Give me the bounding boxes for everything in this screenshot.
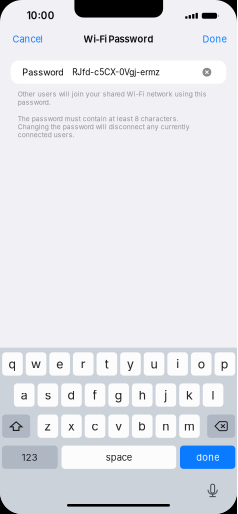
button[interactable]: s <box>38 383 58 407</box>
button[interactable]: o <box>191 352 211 376</box>
button[interactable]: l <box>203 383 223 407</box>
button[interactable]: k <box>179 383 200 407</box>
button[interactable]: i <box>167 352 188 376</box>
staticText: The password must contain at least 8 cha… <box>18 115 190 139</box>
staticText: l <box>212 388 215 402</box>
staticText: Cancel <box>12 33 42 45</box>
button[interactable]: b <box>132 414 153 438</box>
button[interactable]: r <box>73 352 94 376</box>
staticText: u <box>151 356 158 371</box>
button[interactable]: done <box>180 446 235 469</box>
button[interactable]: q <box>2 352 23 376</box>
staticText: n <box>162 419 169 433</box>
staticText: r <box>81 356 86 371</box>
staticText: d <box>67 388 75 402</box>
button[interactable]: z <box>38 414 58 438</box>
staticText: RJfd-c5CX-0Vgj-ermz <box>72 67 160 77</box>
staticText: y <box>127 356 134 371</box>
button[interactable]: j <box>156 383 176 407</box>
button[interactable]: d <box>61 383 82 407</box>
staticText: j <box>164 388 167 402</box>
button[interactable]: 123 <box>2 446 58 469</box>
button[interactable]: space <box>61 446 176 469</box>
button[interactable]: m <box>179 414 200 438</box>
button[interactable]: Done <box>200 30 228 48</box>
staticText: b <box>138 419 146 433</box>
staticText: c <box>92 419 99 433</box>
button[interactable]: c <box>85 414 105 438</box>
button[interactable]: a <box>14 383 35 407</box>
button[interactable]: w <box>26 352 46 376</box>
staticText: p <box>221 356 229 371</box>
button[interactable]: Delete <box>207 414 235 438</box>
button[interactable]: y <box>120 352 141 376</box>
staticText: o <box>198 356 205 371</box>
button[interactable]: Dictation <box>207 483 218 497</box>
button[interactable]: x <box>61 414 82 438</box>
staticText: k <box>186 388 193 402</box>
staticText: Other users will join your shared Wi-Fi … <box>18 90 207 106</box>
staticText: s <box>45 388 51 402</box>
button[interactable]: Clear text <box>200 66 213 79</box>
button[interactable]: v <box>108 414 129 438</box>
staticText: Password <box>22 67 64 78</box>
button[interactable]: Cancel <box>10 30 44 48</box>
button[interactable]: p <box>215 352 235 376</box>
staticText: done <box>196 452 219 463</box>
button[interactable]: Shift <box>2 414 30 438</box>
button[interactable]: g <box>108 383 129 407</box>
staticText: h <box>139 388 146 402</box>
staticText: a <box>21 388 28 402</box>
staticText: Done <box>202 33 226 45</box>
staticText: e <box>56 356 63 371</box>
staticText: 10:00 <box>27 10 55 22</box>
button[interactable]: t <box>97 352 117 376</box>
staticText: Wi-Fi Password <box>83 33 153 45</box>
staticText: v <box>115 419 122 433</box>
button[interactable]: n <box>156 414 176 438</box>
staticText: g <box>115 388 123 402</box>
staticText: space <box>106 452 132 463</box>
staticText: m <box>184 419 195 433</box>
button[interactable]: e <box>49 352 70 376</box>
staticText: 123 <box>22 452 38 463</box>
button[interactable]: u <box>144 352 164 376</box>
button[interactable]: f <box>85 383 105 407</box>
staticText: q <box>8 356 16 371</box>
staticText: z <box>44 419 51 433</box>
staticText: t <box>105 356 109 371</box>
button[interactable]: h <box>132 383 153 407</box>
staticText: f <box>93 388 98 402</box>
staticText: w <box>31 356 41 371</box>
staticText: i <box>176 356 179 371</box>
staticText: x <box>68 419 75 433</box>
